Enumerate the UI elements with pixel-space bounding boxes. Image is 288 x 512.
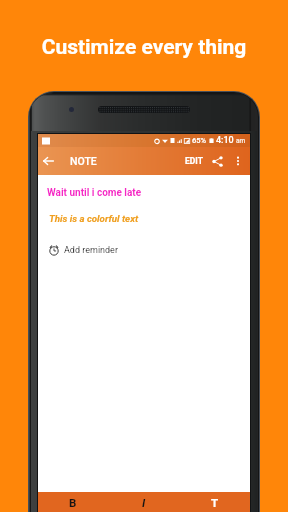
- button[interactable]: More options: [228, 147, 248, 175]
- staticText: Add reminder: [64, 245, 118, 256]
- button[interactable]: Add reminder: [38, 242, 250, 258]
- staticText: B: [69, 496, 77, 509]
- staticText: 4:10: [216, 135, 234, 146]
- staticText: Wait until i come late: [47, 187, 142, 199]
- button[interactable]: I: [108, 492, 179, 512]
- staticText: 65%: [192, 136, 207, 145]
- staticText: am: [236, 137, 246, 145]
- staticText: T: [211, 496, 219, 509]
- staticText: This is a colorful text: [49, 213, 139, 224]
- button[interactable]: EDIT: [182, 148, 206, 174]
- staticText: EDIT: [185, 156, 203, 166]
- button[interactable]: B: [38, 492, 108, 512]
- button[interactable]: T: [179, 492, 250, 512]
- button[interactable]: Back: [38, 147, 58, 175]
- staticText: I: [142, 496, 146, 509]
- staticText: NOTE: [70, 155, 97, 167]
- staticText: Custimize every thing: [0, 35, 288, 60]
- button[interactable]: Share: [206, 147, 228, 175]
